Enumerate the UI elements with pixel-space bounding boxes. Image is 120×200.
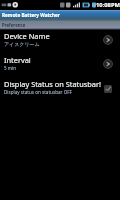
button[interactable]: Toggle Display Status on Statusbar! bbox=[104, 85, 112, 93]
button[interactable]: Interval bbox=[0, 54, 120, 78]
staticText: 5 min bbox=[4, 65, 17, 71]
button[interactable]: Open Device Name bbox=[103, 35, 113, 45]
button[interactable]: Device Name bbox=[0, 30, 120, 54]
staticText: Device Name bbox=[4, 31, 50, 41]
staticText: Interval bbox=[4, 55, 31, 65]
staticText: Display status on statusbar OFF bbox=[4, 89, 72, 95]
staticText: アイスクリーム bbox=[4, 41, 40, 47]
staticText: Display Status on Statusbar! bbox=[4, 79, 102, 89]
staticText: Preference bbox=[2, 22, 26, 28]
staticText: 10:08PM bbox=[96, 1, 120, 9]
button[interactable]: Display Status on Statusbar! bbox=[0, 78, 120, 102]
staticText: Remote Battery Watcher bbox=[2, 12, 60, 18]
button[interactable]: Open Interval bbox=[103, 59, 113, 69]
